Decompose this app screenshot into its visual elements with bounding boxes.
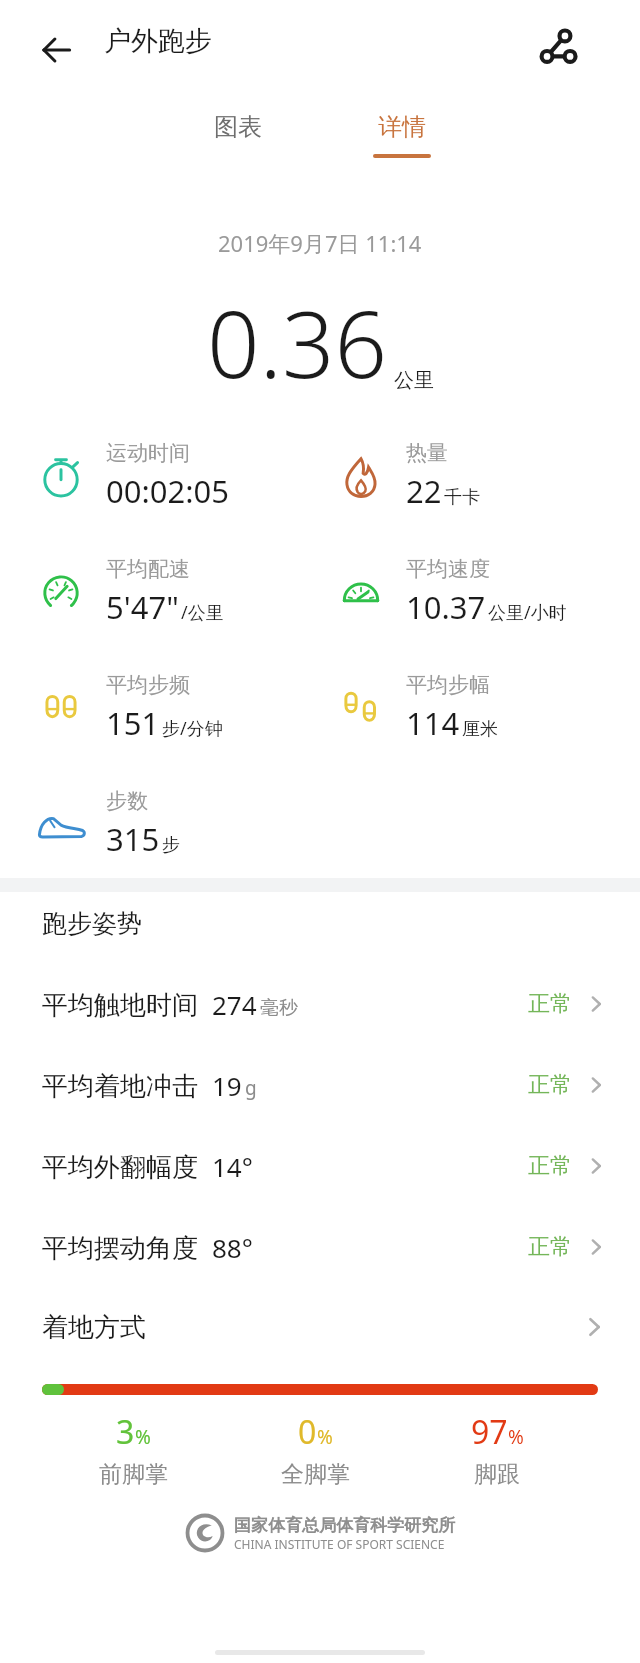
staticText: % [317,1424,333,1450]
staticText: 正常 [528,1233,572,1261]
staticText: 00:02:05 [106,470,230,512]
staticText: 公里 [394,368,434,393]
button[interactable]: 平均步频 [0,656,300,760]
staticText: 114 [406,702,460,744]
staticText: 平均触地时间 [42,989,198,1022]
staticText: 正常 [528,990,572,1018]
button[interactable]: 图表 [178,112,298,172]
staticText: 步数 [106,788,148,814]
staticText: 平均步幅 [406,672,490,698]
staticText: 平均步频 [106,672,190,698]
button[interactable]: 步数 [0,772,300,876]
staticText: 公里/小时 [488,600,567,625]
staticText: 5'47" [106,586,179,628]
staticText: 步/分钟 [162,716,223,741]
staticText: 热量 [406,440,448,466]
button[interactable]: 平均着地冲击 [0,1049,640,1121]
staticText: 国家体育总局体育科学研究所 [234,1515,455,1536]
staticText: 平均速度 [406,556,490,582]
staticText: 平均着地冲击 [42,1070,198,1103]
staticText: g [245,1075,257,1101]
button[interactable]: Back [26,20,86,80]
staticText: 22 [406,470,442,512]
staticText: 88° [212,1230,253,1265]
staticText: % [508,1424,524,1450]
staticText: 着地方式 [42,1311,146,1344]
button[interactable]: 平均速度 [300,540,600,644]
button[interactable]: 平均触地时间 [0,968,640,1040]
button[interactable]: 平均配速 [0,540,300,644]
staticText: 脚跟 [474,1460,520,1489]
button[interactable]: 详情 [342,112,462,172]
staticText: 19 [212,1068,242,1103]
staticText: 全脚掌 [281,1460,350,1489]
staticText: 前脚掌 [99,1460,168,1489]
button[interactable]: 平均摆动角度 [0,1211,640,1283]
staticText: 14° [212,1149,253,1184]
button[interactable]: 着地方式 [0,1292,640,1362]
staticText: % [135,1424,151,1450]
staticText: 厘米 [462,718,498,741]
staticText: 毫秒 [260,996,298,1020]
staticText: 3 [116,1410,135,1454]
staticText: 千卡 [444,486,480,509]
staticText: 10.37 [406,586,486,628]
staticText: 0 [298,1410,317,1454]
staticText: /公里 [181,600,224,625]
button[interactable]: Share [524,18,588,82]
button[interactable]: 运动时间 [0,424,300,528]
staticText: 151 [106,702,160,744]
staticText: 97 [471,1410,508,1454]
staticText: 平均配速 [106,556,190,582]
staticText: 274 [212,987,257,1022]
staticText: 运动时间 [106,440,190,466]
staticText: 平均摆动角度 [42,1232,198,1265]
staticText: 2019年9月7日 11:14 [218,228,422,258]
staticText: 正常 [528,1071,572,1099]
staticText: 步 [162,834,180,857]
button[interactable]: 平均外翻幅度 [0,1130,640,1202]
button[interactable]: 热量 [300,424,600,528]
staticText: 跑步姿势 [42,908,142,939]
button[interactable]: 平均步幅 [300,656,600,760]
staticText: 0.36 [207,280,388,405]
staticText: 正常 [528,1152,572,1180]
staticText: 户外跑步 [104,24,212,58]
staticText: 详情 [378,112,426,142]
staticText: 平均外翻幅度 [42,1151,198,1184]
staticText: CHINA INSTITUTE OF SPORT SCIENCE [234,1536,445,1552]
staticText: 315 [106,818,160,860]
staticText: 图表 [214,112,262,142]
